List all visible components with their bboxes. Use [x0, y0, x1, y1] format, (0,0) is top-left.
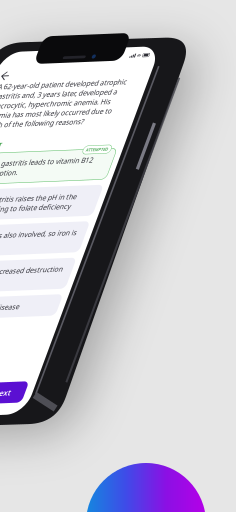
staticText: Atrophic gastritis leads to vitamin B12 …: [27, 238, 236, 280]
staticText: Gastric mucosa is also involved, so iron…: [27, 399, 236, 441]
button[interactable]: Back: [4, 34, 42, 64]
button[interactable]: Hemolysis leads to increased destruction…: [0, 466, 236, 512]
staticText: Atrophic gastritis raises the pH in the …: [27, 318, 236, 361]
staticText: CORRECT: [18, 198, 79, 216]
button[interactable]: Atrophic gastritis raises the pH in the …: [0, 305, 236, 386]
staticText: A 62-year-old patient developed atrophic…: [18, 66, 236, 172]
staticText: Hemolysis leads to increased destruction…: [27, 479, 236, 512]
button[interactable]: Gastric mucosa is also involved, so iron…: [0, 386, 236, 466]
